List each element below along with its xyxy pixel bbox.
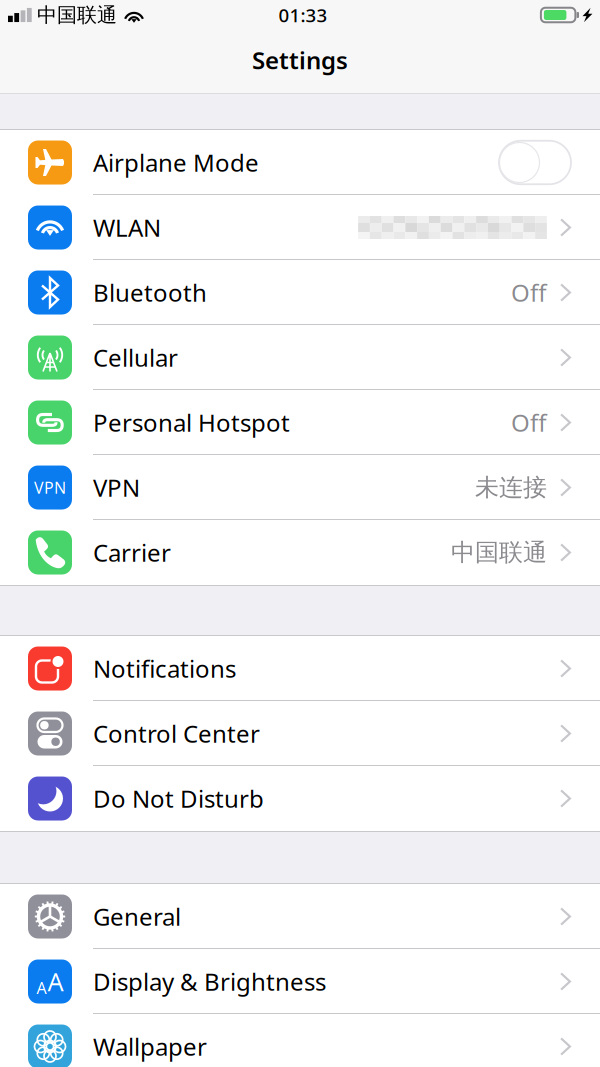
staticText: Off <box>511 277 547 308</box>
staticText: Notifications <box>93 653 236 684</box>
button[interactable]: Personal Hotspot <box>0 390 600 455</box>
button[interactable]: Cellular <box>0 325 600 390</box>
button[interactable]: Wallpaper <box>0 1014 600 1067</box>
staticText: A <box>36 977 46 998</box>
staticText: VPN <box>34 477 66 498</box>
button[interactable]: Control Center <box>0 701 600 766</box>
button[interactable]: Do Not Disturb <box>0 766 600 831</box>
staticText: 未连接 <box>475 473 547 502</box>
button[interactable]: WLAN <box>0 195 600 260</box>
staticText: VPN <box>93 472 140 503</box>
button[interactable]: General <box>0 884 600 949</box>
staticText: Bluetooth <box>93 277 207 308</box>
staticText: Carrier <box>93 537 171 568</box>
staticText: 中国联通 <box>37 3 117 27</box>
staticText: Personal Hotspot <box>93 407 290 438</box>
staticText: Display & Brightness <box>93 966 326 997</box>
staticText: Wallpaper <box>93 1031 207 1062</box>
button[interactable]: Bluetooth <box>0 260 600 325</box>
staticText: Do Not Disturb <box>93 783 264 814</box>
staticText: Off <box>511 407 547 438</box>
staticText: Settings <box>252 44 348 76</box>
button[interactable]: VPN <box>0 455 600 520</box>
staticText: General <box>93 901 181 932</box>
staticText: A <box>47 965 63 998</box>
staticText: Control Center <box>93 718 260 749</box>
staticText: 01:33 <box>278 3 327 27</box>
button[interactable]: A <box>0 949 600 1014</box>
button[interactable]: Airplane Mode <box>0 130 600 195</box>
staticText: Airplane Mode <box>93 147 259 178</box>
button[interactable]: Notifications <box>0 636 600 701</box>
button[interactable]: Carrier <box>0 520 600 585</box>
staticText: Cellular <box>93 342 178 373</box>
staticText: 中国联通 <box>451 538 547 567</box>
staticText: WLAN <box>93 212 161 243</box>
